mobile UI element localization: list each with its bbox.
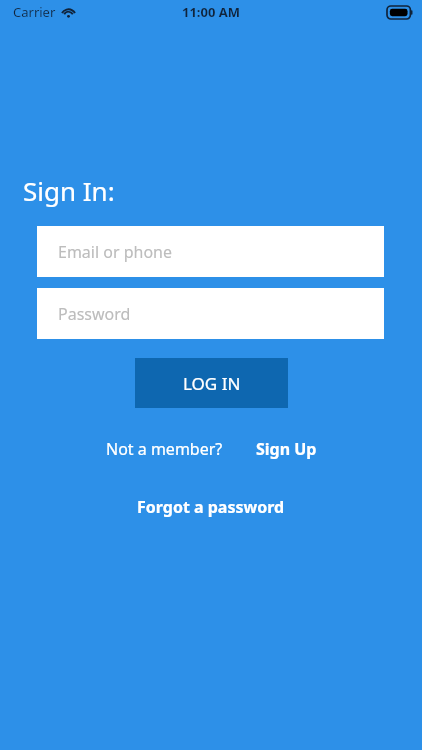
staticText: Not a member? <box>106 438 223 460</box>
staticText: Carrier <box>13 3 56 21</box>
button[interactable]: LOG IN <box>135 358 288 408</box>
staticText: Forgot a password <box>137 496 285 518</box>
staticText: Password <box>58 303 131 325</box>
staticText: 11:00 AM <box>182 3 241 21</box>
staticText: Sign Up <box>256 438 317 460</box>
staticText: Email or phone <box>58 241 173 263</box>
staticText: Sign In: <box>23 173 115 208</box>
button[interactable]: Forgot a password <box>131 491 291 523</box>
button[interactable]: Email or phone input <box>37 226 384 277</box>
button[interactable]: Password input <box>37 288 384 339</box>
button[interactable]: Sign Up <box>254 433 319 465</box>
staticText: LOG IN <box>183 372 241 395</box>
button[interactable]: Not a member? <box>104 433 225 465</box>
